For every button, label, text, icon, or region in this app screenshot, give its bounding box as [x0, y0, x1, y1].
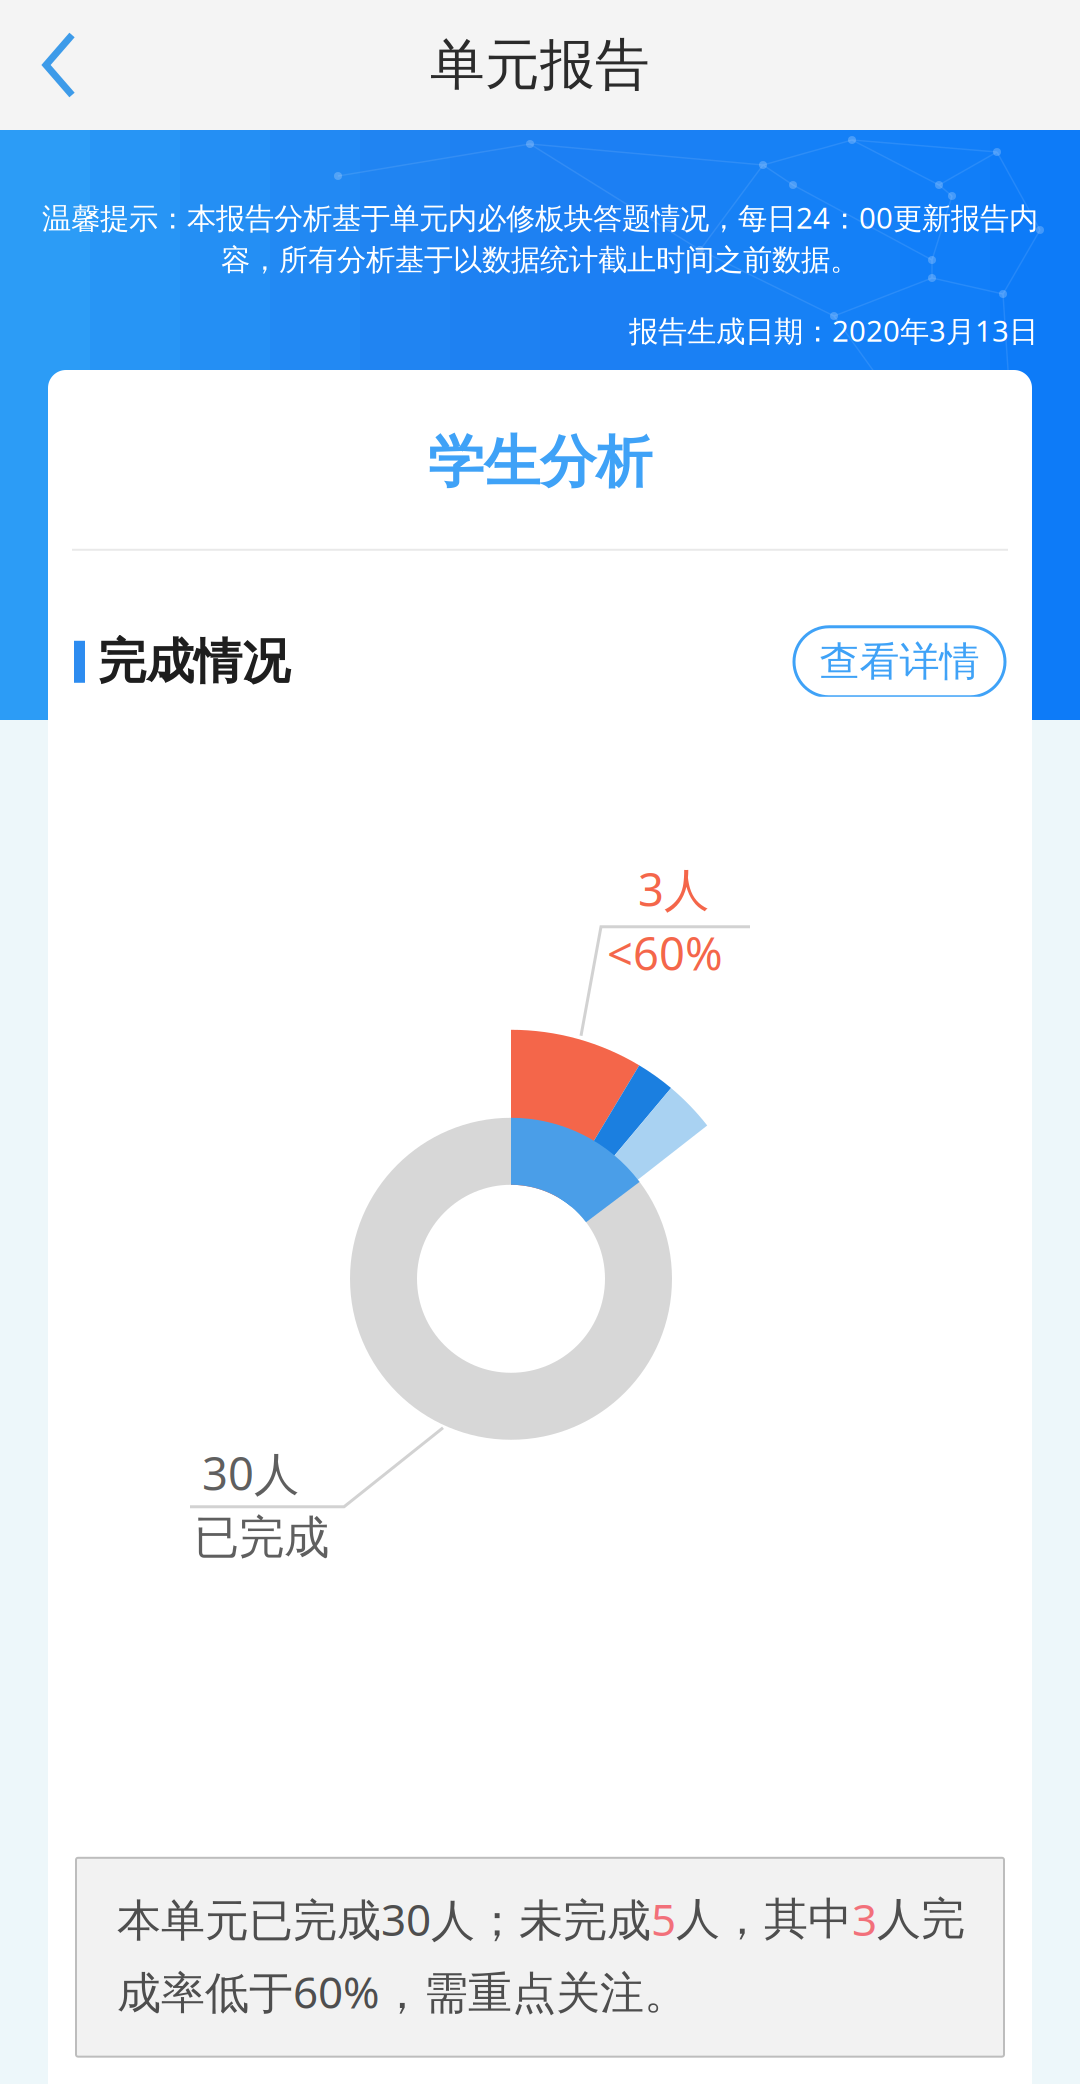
button[interactable]: 查看详情 — [794, 627, 1005, 697]
staticText: 30人 — [202, 1443, 299, 1503]
staticText: 完成情况 — [98, 632, 290, 691]
staticText: 3人 — [638, 859, 709, 919]
staticText: 学生分析 — [428, 428, 652, 497]
staticText: 温馨提示：本报告分析基于单元内必修板块答题情况，每日24：00更新报告内 — [42, 198, 1038, 237]
staticText: 单元报告 — [430, 31, 650, 98]
staticText: 已完成 — [194, 1510, 329, 1565]
staticText: 人完 — [877, 1892, 965, 1946]
staticText: <60% — [607, 923, 723, 983]
staticText: 本单元已完成30人；未完成 — [117, 1890, 651, 1948]
staticText: 3 — [852, 1890, 877, 1948]
button[interactable]: Back — [0, 0, 108, 130]
staticText: 容，所有分析基于以数据统计截止时间之前数据。 — [221, 242, 859, 278]
staticText: 人，其中 — [676, 1892, 852, 1946]
staticText: 报告生成日期：2020年3月13日 — [629, 311, 1038, 350]
staticText: 查看详情 — [819, 637, 979, 686]
staticText: 5 — [651, 1890, 676, 1948]
staticText: 成率低于60%，需重点关注。 — [117, 1962, 688, 2021]
